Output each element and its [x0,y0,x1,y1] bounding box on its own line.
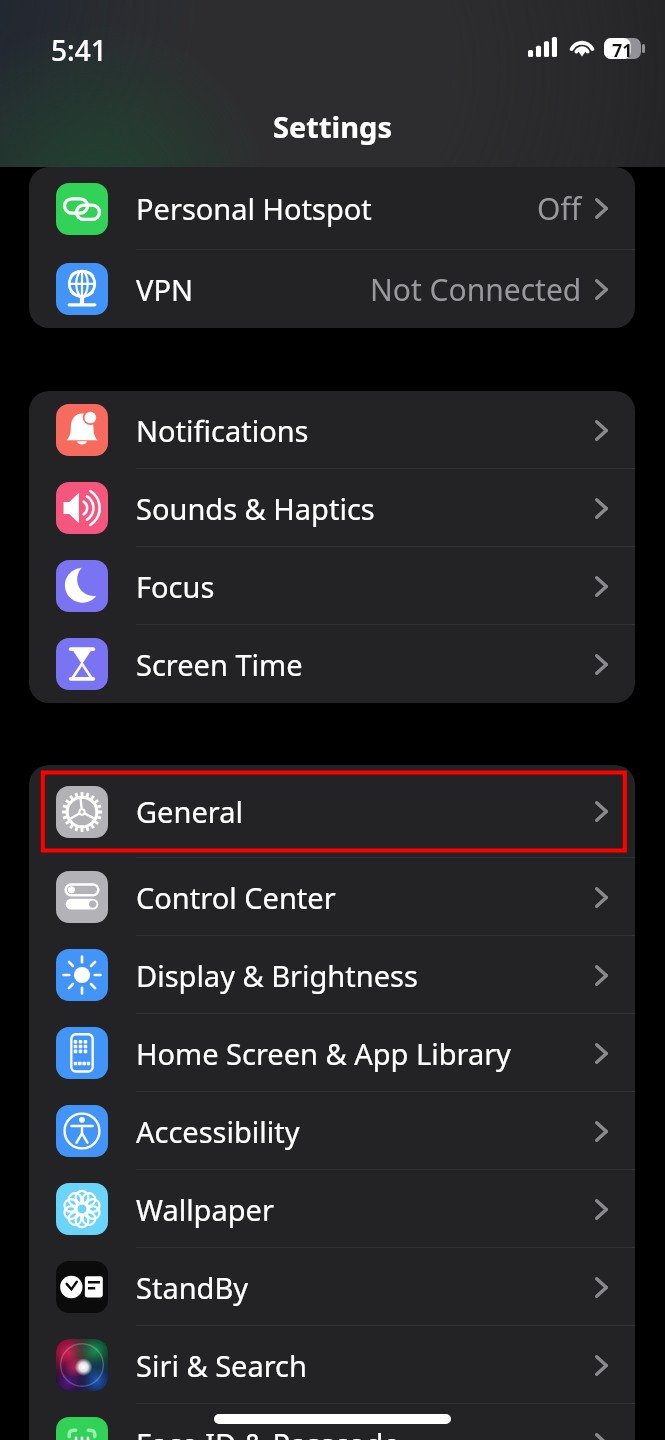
button[interactable]: Siri & Search [29,1326,635,1404]
staticText: Control Center [136,878,336,917]
staticText: Notifications [136,411,309,450]
button[interactable]: StandBy [29,1248,635,1326]
other: General [56,786,108,838]
button[interactable]: Display & Brightness [29,936,635,1014]
staticText: Settings [0,107,665,146]
other: Display & Brightness [56,949,108,1001]
staticText: Not Connected [370,269,582,310]
other: VPN [56,263,108,315]
staticText: Screen Time [136,645,303,684]
staticText: General [136,792,243,831]
button[interactable]: Focus [29,547,635,625]
staticText: Personal Hotspot [136,189,372,228]
button[interactable]: Home Screen & App Library [29,1014,635,1092]
other: Accessibility [56,1105,108,1157]
staticText: Sounds & Haptics [136,489,375,528]
staticText: Off [537,188,582,229]
staticText: Accessibility [136,1112,300,1151]
other: Siri & Search [56,1339,108,1391]
other: Sounds & Haptics [56,482,108,534]
other: Notifications [56,404,108,456]
other: Wallpaper [56,1183,108,1235]
staticText: Focus [136,567,215,606]
other: Home Screen & App Library [56,1027,108,1079]
button[interactable]: General [29,765,635,858]
button[interactable]: Wallpaper [29,1170,635,1248]
button[interactable]: Sounds & Haptics [29,469,635,547]
staticText: Display & Brightness [136,956,418,995]
button[interactable]: Personal Hotspot [29,167,635,250]
other: Screen Time [56,638,108,690]
other: Personal Hotspot [56,183,108,235]
staticText: StandBy [136,1268,249,1307]
staticText: VPN [136,270,193,309]
staticText: Face ID & Passcode [136,1424,400,1440]
other: Control Center [56,871,108,923]
button[interactable]: Face ID & Passcode [29,1404,635,1440]
other: StandBy [56,1261,108,1313]
staticText: Home Screen & App Library [136,1034,511,1073]
other: Face ID & Passcode [56,1417,108,1440]
button[interactable]: Accessibility [29,1092,635,1170]
button[interactable]: Notifications [29,391,635,469]
staticText: 5:41 [51,31,107,69]
staticText: Wallpaper [136,1190,274,1229]
button[interactable]: Screen Time [29,625,635,703]
staticText: Siri & Search [136,1346,307,1385]
staticText: 71 [612,38,633,59]
button[interactable]: VPN [29,250,635,328]
button[interactable]: Control Center [29,858,635,936]
other: Focus [56,560,108,612]
